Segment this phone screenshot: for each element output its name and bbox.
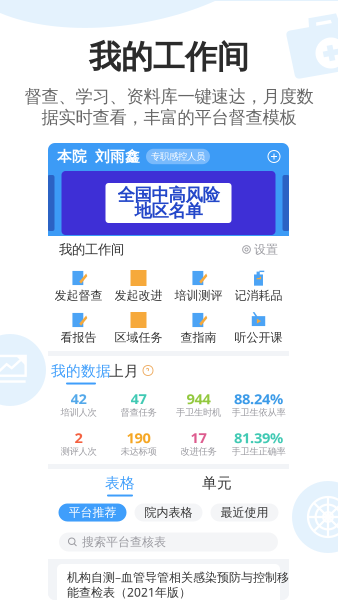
staticText: 院内表格	[144, 505, 192, 520]
button[interactable]: 表格	[95, 477, 145, 496]
staticText: 平台推荐	[68, 505, 116, 520]
staticText: 改进任务	[180, 446, 216, 457]
button[interactable]: 我的数据	[59, 365, 103, 384]
button[interactable]: 帮助	[143, 365, 153, 375]
staticText: 17	[190, 428, 206, 447]
staticText: 表格	[105, 474, 135, 492]
button[interactable]: 院内表格	[134, 503, 202, 521]
staticText: 单元	[202, 474, 232, 492]
staticText: 测评人次	[60, 446, 96, 457]
button[interactable]: 机构自测–血管导管相关感染预防与控制移动智	[57, 564, 280, 600]
button[interactable]: 上月	[112, 365, 136, 376]
staticText: 督查、学习、资料库一键速达，月度数	[24, 86, 313, 107]
staticText: 能查检表（2021年版）	[67, 584, 191, 600]
staticText: 最近使用	[220, 505, 268, 520]
button[interactable]: 查指南	[168, 312, 228, 342]
staticText: 47	[130, 389, 146, 408]
staticText: 手卫生依从率	[231, 407, 285, 418]
staticText: 据实时查看，丰富的平台督查模板	[41, 107, 296, 128]
staticText: 记消耗品	[234, 288, 282, 303]
staticText: 看报告	[60, 330, 96, 345]
staticText: 42	[70, 389, 86, 408]
staticText: 88.24%	[234, 389, 283, 408]
staticText: 搜索平台查核表	[82, 535, 166, 549]
button[interactable]: 设置	[242, 242, 278, 257]
staticText: 培训测评	[174, 288, 222, 303]
staticText: 查指南	[180, 330, 216, 345]
staticText: 手卫生时机	[176, 407, 221, 418]
staticText: 我的数据	[51, 362, 111, 380]
button[interactable]: 培训测评	[168, 270, 228, 300]
button[interactable]: 记消耗品	[228, 270, 288, 300]
staticText: 培训人次	[60, 407, 96, 418]
button[interactable]: 单元	[192, 477, 242, 488]
staticText: 听公开课	[234, 330, 282, 345]
staticText: 未达标项	[120, 446, 156, 457]
staticText: 区域任务	[114, 330, 162, 345]
button[interactable]: 听公开课	[228, 312, 288, 342]
staticText: 上月	[109, 362, 139, 380]
staticText: 发起督查	[54, 288, 102, 303]
staticText: 地区名单	[134, 200, 202, 222]
staticText: 全国中高风险	[117, 184, 219, 206]
staticText: 专职感控人员	[151, 151, 205, 162]
staticText: 设置	[254, 242, 278, 257]
staticText: 944	[186, 389, 210, 408]
button[interactable]: 最近使用	[210, 503, 278, 521]
staticText: 我的工作间	[59, 241, 124, 258]
staticText: 190	[126, 428, 150, 447]
staticText: 督查任务	[120, 407, 156, 418]
staticText: 我的工作间	[89, 37, 249, 77]
staticText: 本院	[57, 147, 87, 165]
button[interactable]: 看报告	[48, 312, 108, 342]
button[interactable]: 平台推荐	[58, 503, 126, 521]
staticText: 机构自测–血管导管相关感染预防与控制移动智	[67, 569, 313, 585]
button[interactable]: 区域任务	[108, 312, 168, 342]
staticText: 81.39%	[234, 428, 283, 447]
button[interactable]: 发起改进	[108, 270, 168, 300]
button[interactable]: 发起督查	[48, 270, 108, 300]
staticText: 2	[74, 428, 82, 447]
staticText: 刘雨鑫	[95, 147, 140, 165]
staticText: 手卫生正确率	[231, 446, 285, 457]
staticText: 发起改进	[114, 288, 162, 303]
